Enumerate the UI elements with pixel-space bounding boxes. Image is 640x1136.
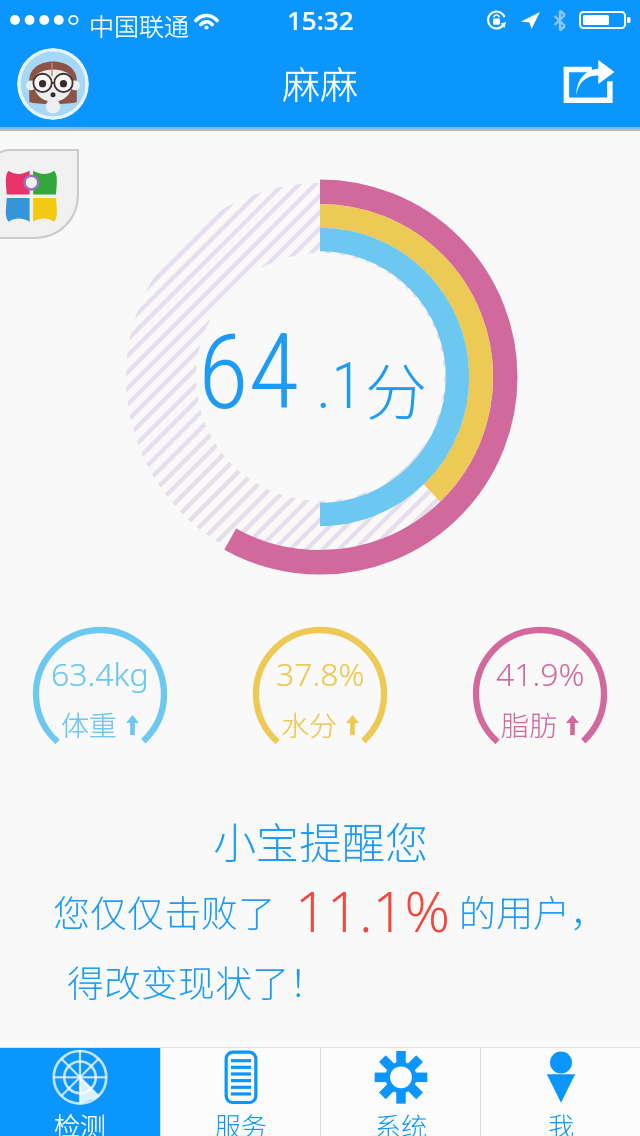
staticText: 63.4kg [51,652,149,696]
staticText: 体重 [61,704,118,745]
staticText: 分 [365,343,428,433]
staticText: 64 [198,312,300,434]
staticText: 小宝提醒您 [213,809,428,871]
button[interactable]: 检测 [0,1048,160,1136]
staticText: 的用户， [459,884,607,938]
button[interactable]: 系统 [321,1048,480,1136]
button[interactable]: 63.4kg [32,626,168,762]
button[interactable]: 37.8% [252,626,388,762]
staticText: 脂肪 [501,704,558,745]
staticText: 中国联通 [89,7,190,43]
staticText: 得改变现状了！ [67,954,326,1008]
staticText: 水分 [281,704,338,745]
button[interactable]: 服务 [161,1048,320,1136]
staticText: 41.9% [496,652,585,696]
staticText: .1 [316,349,363,424]
button[interactable]: App logo [0,150,78,238]
button[interactable]: 我 [481,1048,640,1136]
staticText: 15:32 [287,2,354,37]
staticText: 我 [548,1106,575,1136]
staticText: 服务 [215,1106,268,1136]
button[interactable]: Share [560,55,618,113]
staticText: 37.8% [276,652,365,696]
staticText: 11.1% [295,872,451,948]
staticText: 系统 [375,1106,428,1136]
staticText: 麻麻 [282,55,359,110]
staticText: 您仅仅击败了 [53,884,275,938]
button[interactable]: 41.9% [472,626,608,762]
button[interactable]: Profile [17,48,89,120]
staticText: 检测 [54,1106,107,1136]
